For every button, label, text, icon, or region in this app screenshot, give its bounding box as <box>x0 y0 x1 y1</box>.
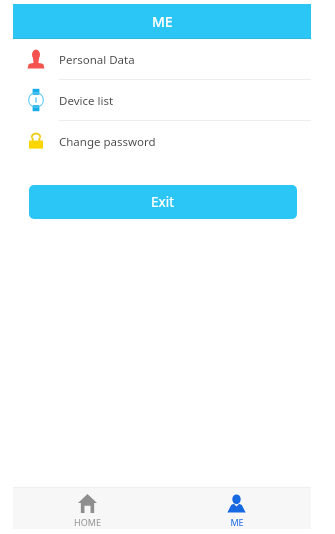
other: Home <box>78 494 97 513</box>
staticText: Personal Data <box>59 52 135 68</box>
staticText: Exit <box>151 193 175 211</box>
button[interactable]: Home <box>13 490 162 528</box>
staticText: ME <box>230 516 244 528</box>
button[interactable]: Exit <box>29 185 297 219</box>
button[interactable]: Device list <box>13 80 311 120</box>
staticText: Device list <box>59 93 114 109</box>
staticText: ME <box>152 12 173 31</box>
button[interactable]: Personal Data <box>13 39 311 79</box>
other: Me <box>227 494 246 513</box>
staticText: Change password <box>59 134 156 150</box>
staticText: HOME <box>74 516 101 528</box>
button[interactable]: Change password <box>13 121 311 161</box>
button[interactable]: Me <box>162 490 311 528</box>
